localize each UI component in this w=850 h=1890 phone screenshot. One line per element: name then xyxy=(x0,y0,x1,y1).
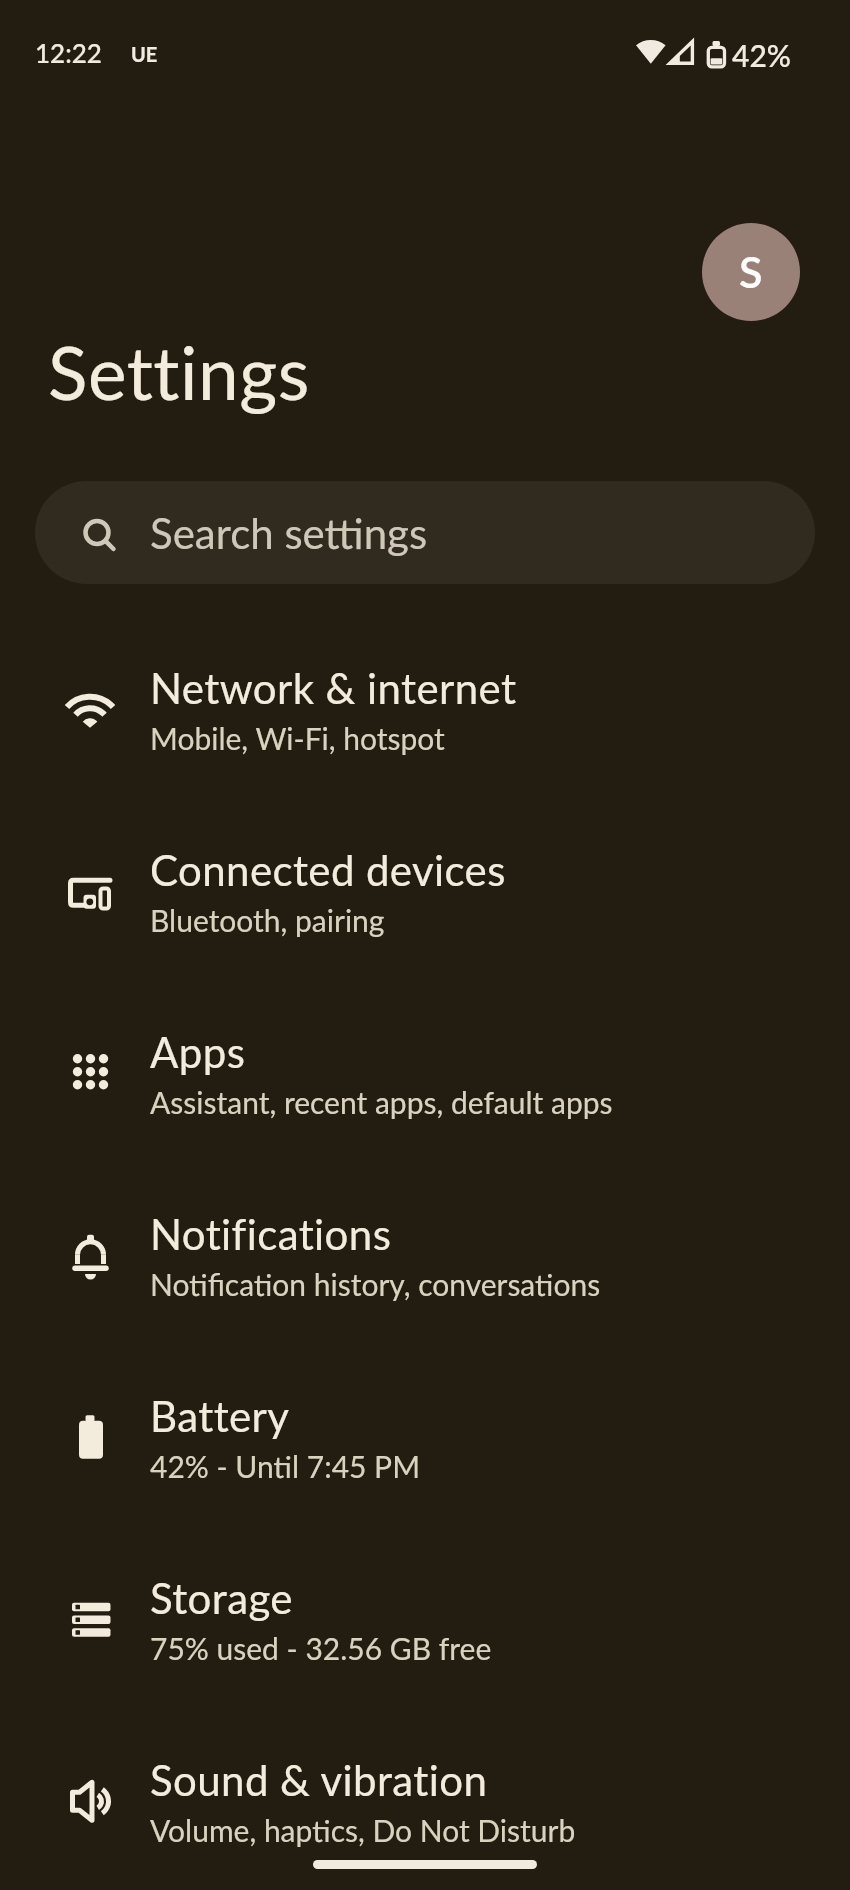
staticText: Bluetooth, pairing xyxy=(150,902,385,938)
button[interactable]: Battery xyxy=(0,1346,850,1528)
staticText: Battery xyxy=(150,1391,290,1441)
staticText: UE xyxy=(131,42,158,66)
button[interactable]: Storage xyxy=(0,1528,850,1710)
staticText: 42% xyxy=(732,37,791,73)
staticText: Search settings xyxy=(150,508,428,558)
button[interactable]: Notifications xyxy=(0,1164,850,1346)
staticText: Notification history, conversations xyxy=(150,1266,601,1302)
staticText: Storage xyxy=(150,1573,293,1623)
staticText: Sound & vibration xyxy=(150,1755,488,1805)
button[interactable]: Search settings xyxy=(35,481,815,584)
staticText: Mobile, Wi-Fi, hotspot xyxy=(150,720,445,756)
staticText: Settings xyxy=(48,328,310,416)
staticText: S xyxy=(739,246,763,298)
staticText: Network & internet xyxy=(150,663,517,713)
staticText: 75% used - 32.56 GB free xyxy=(150,1630,492,1666)
staticText: Notifications xyxy=(150,1209,392,1259)
button[interactable]: Network & internet xyxy=(0,618,850,800)
staticText: 12:22 xyxy=(35,37,102,68)
staticText: 42% - Until 7:45 PM xyxy=(150,1448,420,1484)
button[interactable]: Connected devices xyxy=(0,800,850,982)
button[interactable]: Apps xyxy=(0,982,850,1164)
staticText: Volume, haptics, Do Not Disturb xyxy=(150,1812,576,1848)
staticText: Apps xyxy=(150,1027,246,1077)
staticText: Connected devices xyxy=(150,845,506,895)
button[interactable]: S xyxy=(702,223,800,321)
button[interactable]: Sound & vibration xyxy=(0,1710,850,1890)
staticText: Assistant, recent apps, default apps xyxy=(150,1084,613,1120)
